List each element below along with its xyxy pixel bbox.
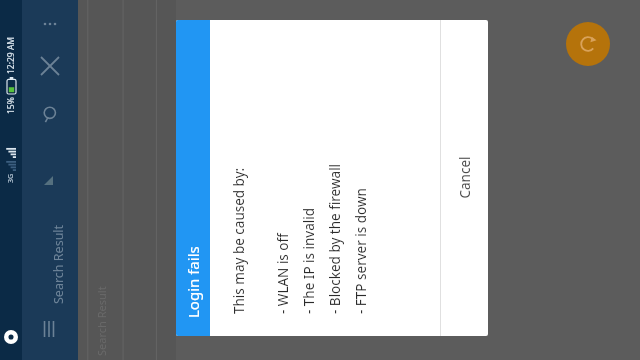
button[interactable]: Home	[4, 330, 18, 344]
staticText: 12:29 AM	[5, 36, 17, 74]
staticText: - FTP server is down	[352, 188, 370, 314]
staticText: Search Result	[94, 286, 109, 356]
staticText: Search Result	[50, 224, 67, 304]
staticText: This may be caused by:	[230, 167, 248, 314]
button[interactable]: Cancel	[441, 20, 488, 336]
staticText: Cancel	[455, 155, 473, 198]
button[interactable]: Close	[34, 50, 66, 82]
staticText: - Blocked by the firewall	[326, 163, 344, 314]
button[interactable]: Refresh	[566, 22, 610, 66]
staticText: Login fails	[183, 246, 203, 318]
staticText: 3G	[6, 173, 16, 183]
staticText: - The IP is invalid	[300, 207, 318, 314]
staticText: 15%	[5, 97, 17, 114]
button[interactable]: Search	[36, 100, 64, 128]
button[interactable]: Navigation menu	[32, 312, 66, 346]
button[interactable]: More options	[36, 10, 64, 38]
button[interactable]: Dropdown	[36, 168, 60, 192]
staticText: - WLAN is off	[274, 233, 292, 314]
